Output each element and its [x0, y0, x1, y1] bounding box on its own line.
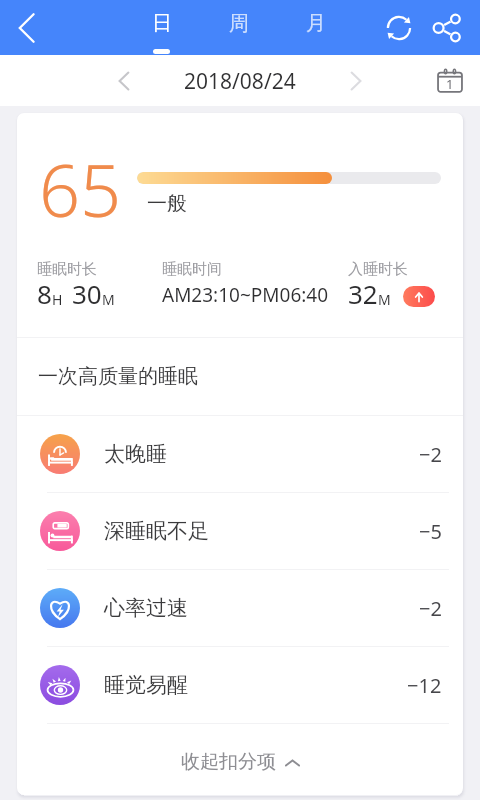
staticText: 32 [348, 276, 378, 311]
staticText: M [378, 290, 391, 309]
staticText: −12 [407, 672, 442, 699]
button[interactable]: Previous day [103, 60, 145, 102]
button[interactable]: Next day [335, 60, 377, 102]
staticText: −5 [419, 518, 442, 545]
button[interactable]: Calendar [430, 61, 470, 101]
staticText: M [102, 290, 115, 309]
staticText: 深睡眠不足 [104, 518, 209, 544]
button[interactable]: 日 [123, 0, 200, 55]
staticText: 日 [152, 11, 172, 36]
staticText: 2018/08/24 [184, 67, 296, 96]
staticText: 睡眠时间 [162, 260, 222, 279]
staticText: 一次高质量的睡眠 [38, 364, 198, 389]
staticText: 月 [306, 11, 326, 36]
staticText: −2 [419, 441, 442, 468]
button[interactable]: 太晚睡 [17, 416, 463, 493]
staticText: 周 [229, 11, 249, 36]
staticText: 入睡时长 [348, 260, 408, 279]
staticText: 心率过速 [104, 595, 188, 621]
staticText: 睡觉易醒 [104, 672, 188, 698]
staticText: 太晚睡 [104, 441, 167, 467]
staticText: 1 [446, 75, 454, 93]
button[interactable]: 深睡眠不足 [17, 493, 463, 570]
staticText: 一般 [147, 191, 187, 216]
button[interactable]: Refresh [371, 0, 427, 55]
staticText: 收起扣分项 [181, 750, 276, 774]
button[interactable]: Back [0, 0, 55, 55]
button[interactable]: 收起扣分项 [17, 724, 463, 795]
button[interactable]: 月 [277, 0, 354, 55]
button[interactable]: 心率过速 [17, 570, 463, 647]
staticText: 睡眠时长 [37, 260, 97, 279]
button[interactable]: Share [419, 0, 475, 55]
button[interactable]: 睡觉易醒 [17, 647, 463, 724]
staticText: 65 [39, 140, 122, 238]
staticText: AM23:10~PM06:40 [162, 282, 329, 308]
staticText: H [52, 290, 63, 309]
staticText: 30 [72, 276, 102, 311]
staticText: 8 [37, 276, 52, 311]
staticText: −2 [419, 595, 442, 622]
button[interactable]: 周 [200, 0, 277, 55]
